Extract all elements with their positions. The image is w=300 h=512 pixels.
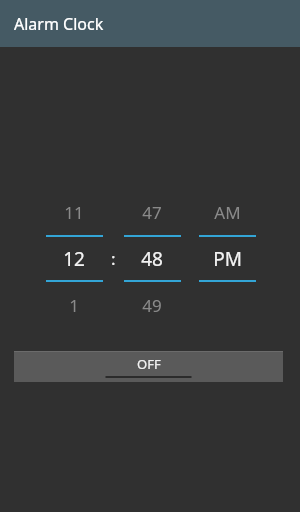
staticText: Alarm Clock — [14, 13, 104, 35]
staticText: AM — [214, 201, 241, 224]
button[interactable]: 12 — [41, 237, 107, 280]
button[interactable]: 48 — [119, 237, 185, 280]
button[interactable]: 47 — [119, 189, 185, 235]
staticText: OFF — [137, 355, 161, 373]
staticText: 12 — [63, 246, 85, 272]
staticText: 49 — [142, 294, 162, 317]
button[interactable]: PM — [194, 237, 260, 280]
button[interactable]: 49 — [119, 282, 185, 328]
staticText: PM — [213, 246, 242, 272]
button[interactable]: 1 — [41, 282, 107, 328]
button[interactable]: AM — [194, 189, 260, 235]
staticText: 11 — [64, 201, 84, 224]
staticText: 47 — [142, 201, 162, 224]
staticText: 48 — [141, 246, 163, 272]
staticText: : — [111, 247, 116, 270]
button[interactable]: OFF — [14, 351, 283, 382]
button[interactable]: 11 — [41, 189, 107, 235]
staticText: 1 — [69, 294, 79, 317]
